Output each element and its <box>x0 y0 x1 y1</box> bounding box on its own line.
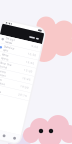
button[interactable]: Design review <box>0 38 32 46</box>
button[interactable]: Gym session <box>0 80 32 88</box>
button[interactable]: Write specs <box>0 55 32 63</box>
staticText: Retro notes <box>0 72 4 79</box>
button[interactable]: Notes <box>11 131 22 140</box>
button[interactable]: Email triage <box>0 88 32 96</box>
staticText: 9:00 <box>23 40 30 44</box>
button[interactable]: Ship the build <box>0 63 32 71</box>
button[interactable]: Profile <box>22 131 33 140</box>
staticText: Design review <box>0 39 6 46</box>
staticText: Write specs <box>0 55 3 62</box>
button[interactable]: Calendar <box>0 131 11 140</box>
button[interactable]: Retro notes <box>0 71 32 80</box>
staticText: Standup sync <box>0 47 7 54</box>
staticText: Ship the build <box>0 64 8 71</box>
staticText: Email triage <box>0 89 4 96</box>
staticText: Gym session <box>0 80 6 87</box>
button[interactable]: Standup sync <box>0 46 32 55</box>
